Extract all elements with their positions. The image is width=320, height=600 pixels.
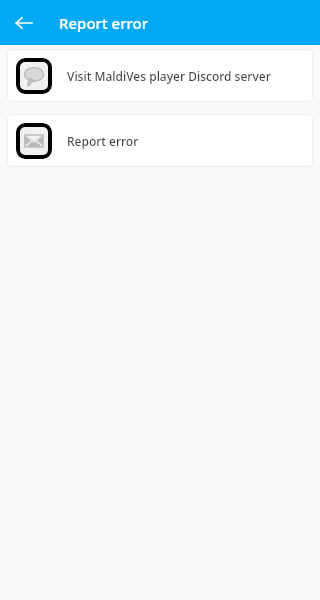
- staticText: Visit MaldiVes player Discord server: [67, 68, 271, 84]
- button[interactable]: Report error: [7, 114, 313, 167]
- staticText: Report error: [59, 13, 149, 33]
- staticText: Report error: [67, 133, 139, 149]
- button[interactable]: Back: [8, 7, 40, 39]
- button[interactable]: Visit MaldiVes player Discord server: [7, 49, 313, 102]
